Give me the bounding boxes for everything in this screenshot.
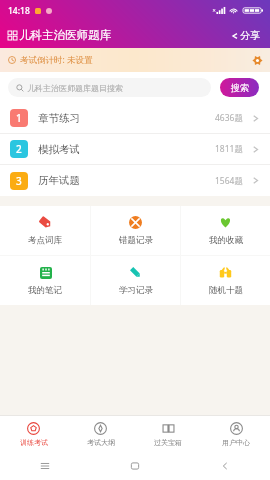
button[interactable]: 1 (0, 103, 270, 133)
staticText: 随机十题 (209, 285, 243, 296)
button[interactable]: Menu (8, 31, 17, 40)
staticText: 考点词库 (28, 235, 62, 246)
staticText: 过关宝箱 (154, 438, 182, 447)
button[interactable]: 分享 (229, 29, 262, 42)
staticText: 用户中心 (222, 438, 250, 447)
button[interactable]: 儿科主治医师题库题目搜索 (8, 78, 211, 97)
button[interactable]: 搜索 (220, 78, 259, 97)
staticText: 考试倒计时: 未设置 (20, 54, 93, 66)
staticText: 我的笔记 (28, 285, 62, 296)
button[interactable]: Settings (252, 55, 263, 66)
staticText: 1564题 (215, 175, 243, 187)
button[interactable]: 学习记录 (91, 256, 180, 305)
staticText: 历年试题 (38, 174, 80, 187)
staticText: 1811题 (215, 143, 243, 155)
staticText: 14:18 (8, 5, 30, 17)
staticText: 学习记录 (119, 285, 153, 296)
staticText: 搜索 (231, 82, 249, 93)
button[interactable]: Recent apps (38, 459, 52, 473)
button[interactable]: 训练考试 (0, 416, 67, 452)
button[interactable]: 考试大纲 (67, 416, 134, 452)
staticText: 1 (16, 111, 22, 125)
button[interactable]: 过关宝箱 (134, 416, 202, 452)
button[interactable]: 我的收藏 (181, 206, 270, 255)
button[interactable]: 2 (0, 134, 270, 164)
staticText: 章节练习 (38, 112, 80, 125)
button[interactable]: 考点词库 (0, 206, 90, 255)
button[interactable]: Home (128, 459, 142, 473)
button[interactable]: 我的笔记 (0, 256, 90, 305)
staticText: 4636题 (215, 112, 243, 124)
button[interactable]: 3 (0, 165, 270, 196)
staticText: 3 (16, 174, 22, 188)
staticText: 训练考试 (20, 438, 48, 447)
staticText: 儿科主治医师题库题目搜索 (27, 83, 123, 93)
staticText: 分享 (240, 29, 260, 42)
staticText: 考试大纲 (87, 438, 115, 447)
button[interactable]: Back (218, 459, 232, 473)
staticText: 错题记录 (119, 235, 153, 246)
staticText: 2 (16, 142, 22, 156)
staticText: 我的收藏 (209, 235, 243, 246)
staticText: 模拟考试 (38, 143, 80, 156)
staticText: 儿科主治医师题库 (19, 28, 111, 42)
button[interactable]: 随机十题 (181, 256, 270, 305)
button[interactable]: 用户中心 (202, 416, 270, 452)
button[interactable]: 错题记录 (91, 206, 180, 255)
